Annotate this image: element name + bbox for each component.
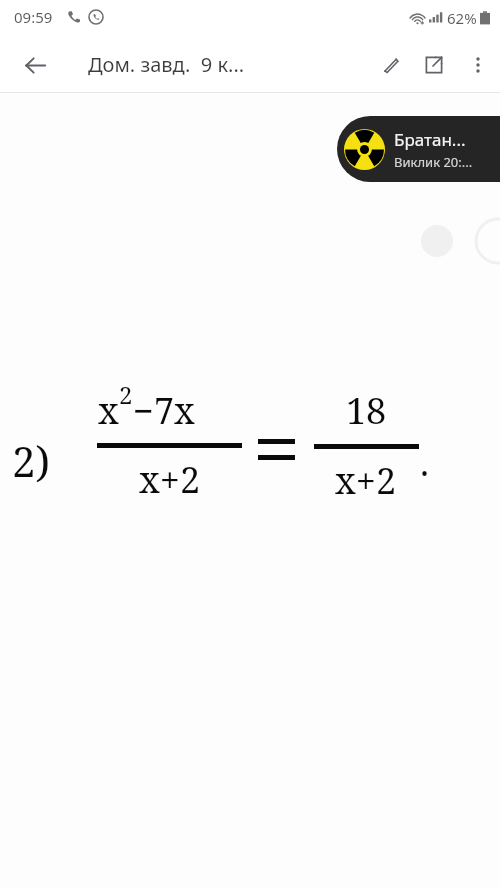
button[interactable]: Open in new window <box>412 43 456 87</box>
staticText: Дом. завд. 9 к... <box>88 51 245 78</box>
staticText: x <box>98 386 119 435</box>
staticText: Братан... <box>394 128 466 151</box>
staticText: x+2 <box>335 456 397 505</box>
staticText: 18 <box>346 386 387 435</box>
staticText: 62% <box>447 8 477 28</box>
staticText: 7x <box>154 386 195 435</box>
staticText: 2 <box>119 378 133 411</box>
staticText: x+2 <box>139 455 201 504</box>
staticText: Виклик 20:... <box>394 153 473 171</box>
staticText: 2) <box>12 432 51 489</box>
button[interactable]: Edit <box>368 43 412 87</box>
button[interactable]: Братан... <box>337 116 500 182</box>
staticText: 09:59 <box>14 7 53 27</box>
button[interactable]: Back <box>12 42 58 88</box>
button[interactable]: More options <box>456 43 500 87</box>
staticText: − <box>133 386 154 435</box>
staticText: . <box>420 438 429 487</box>
